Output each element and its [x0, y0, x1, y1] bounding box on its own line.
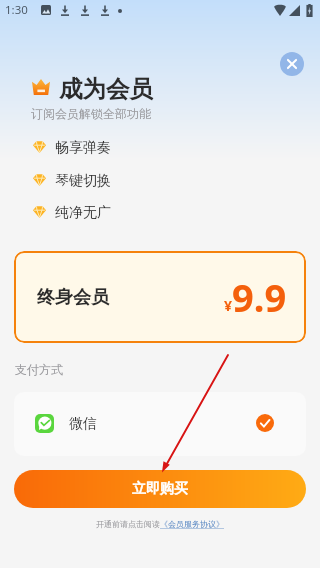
staticText: 1:30 [5, 2, 28, 18]
staticText: 开通前请点击阅读 [96, 519, 160, 529]
staticText: 支付方式 [15, 362, 63, 377]
staticText: 立即购买 [132, 480, 188, 498]
button[interactable]: 《会员服务协议》 [160, 519, 224, 529]
staticText: 纯净无广 [55, 204, 111, 222]
button[interactable]: 立即购买 [14, 470, 306, 508]
staticText: ¥ [224, 296, 233, 315]
button[interactable]: 畅享弹奏 [33, 139, 111, 157]
button[interactable]: 琴键切换 [33, 172, 111, 190]
staticText: 终身会员 [37, 286, 109, 309]
staticText: 成为会员 [59, 74, 153, 104]
staticText: 畅享弹奏 [55, 139, 111, 157]
button[interactable]: Close [280, 52, 304, 76]
button[interactable]: 纯净无广 [33, 204, 111, 222]
staticText: 琴键切换 [55, 172, 111, 190]
staticText: 订阅会员解锁全部功能 [31, 106, 151, 121]
button[interactable]: 终身会员 [14, 251, 306, 343]
staticText: 9.9 [232, 271, 287, 323]
button[interactable]: 微信 [14, 392, 306, 456]
staticText: 微信 [69, 415, 97, 433]
